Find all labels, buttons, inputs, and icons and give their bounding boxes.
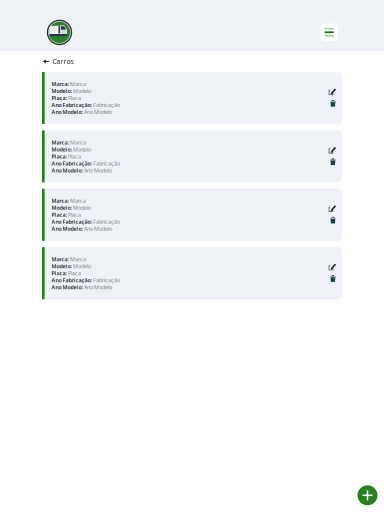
staticText: Marca:: [51, 80, 68, 88]
staticText: Ano Modelo:: [51, 167, 82, 174]
staticText: Marca:: [51, 197, 68, 204]
button[interactable]: Excluir: [327, 155, 337, 165]
staticText: Placa: [68, 270, 81, 277]
button[interactable]: Editar: [327, 145, 337, 155]
staticText: Modelo:: [51, 263, 71, 270]
staticText: Ano Modelo: [84, 167, 112, 174]
staticText: Modelo: [73, 146, 91, 153]
staticText: Carros: [53, 57, 74, 66]
staticText: Modelo:: [51, 146, 71, 153]
staticText: Fabricação: [93, 218, 120, 225]
staticText: Marca: [70, 197, 86, 204]
button[interactable]: Excluir: [327, 97, 337, 107]
staticText: Ano Modelo:: [51, 284, 82, 291]
button[interactable]: Editar: [327, 203, 337, 213]
staticText: Ano Modelo: [84, 108, 112, 116]
staticText: Placa: [68, 153, 81, 160]
staticText: Marca: [70, 80, 86, 88]
staticText: Placa:: [51, 153, 66, 160]
staticText: Ano Modelo:: [51, 225, 82, 232]
staticText: Modelo: [73, 263, 91, 270]
staticText: Placa: [68, 211, 81, 218]
button[interactable]: Excluir: [327, 272, 337, 282]
button[interactable]: Adicionar: [357, 485, 377, 505]
staticText: Fabricação: [93, 160, 120, 167]
staticText: Placa:: [51, 94, 66, 102]
button[interactable]: Editar: [327, 262, 337, 272]
staticText: Ano Fabricação:: [51, 218, 91, 225]
staticText: Ano Fabricação:: [51, 101, 91, 109]
button[interactable]: Excluir: [327, 214, 337, 224]
staticText: Ano Fabricação:: [51, 160, 91, 167]
button[interactable]: Carros: [43, 55, 74, 68]
staticText: Ano Fabricação:: [51, 277, 91, 284]
staticText: Marca: [70, 139, 86, 146]
staticText: Marca: [70, 256, 86, 263]
staticText: Modelo:: [51, 204, 71, 211]
staticText: Marca:: [51, 139, 68, 146]
staticText: Fabricação: [93, 101, 120, 109]
staticText: Modelo:: [51, 87, 71, 95]
staticText: Placa:: [51, 211, 66, 218]
staticText: Fabricação: [93, 277, 120, 284]
staticText: Marca:: [51, 256, 68, 263]
staticText: Placa:: [51, 270, 66, 277]
staticText: Modelo: [73, 87, 91, 95]
staticText: Ano Modelo: [84, 284, 112, 291]
staticText: Modelo: [73, 204, 91, 211]
staticText: Placa: [68, 94, 81, 102]
staticText: Ano Modelo:: [51, 108, 82, 116]
button[interactable]: Editar: [327, 87, 337, 97]
button[interactable]: Menu: [320, 23, 338, 41]
staticText: Ano Modelo: [84, 225, 112, 232]
